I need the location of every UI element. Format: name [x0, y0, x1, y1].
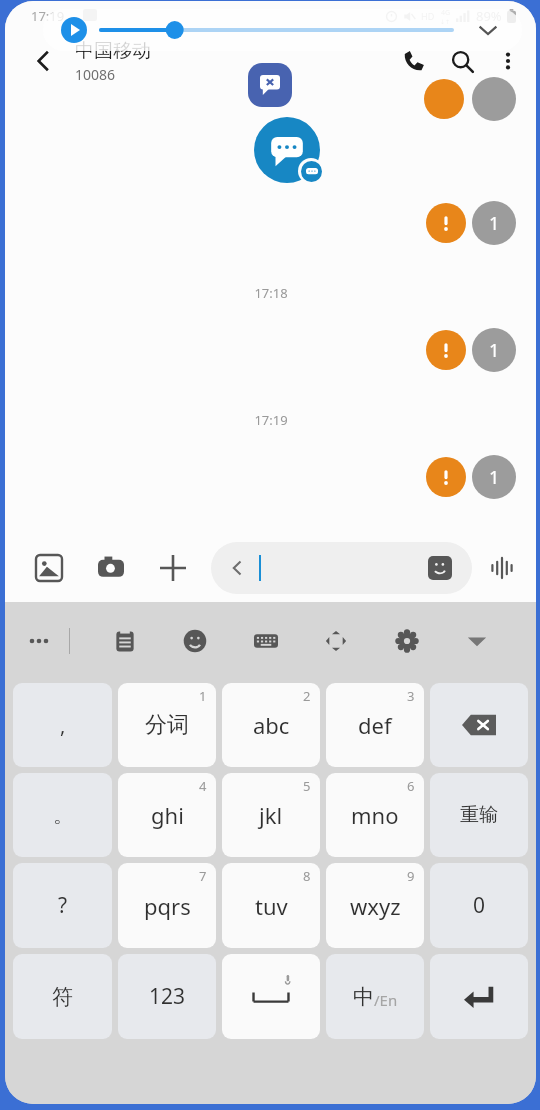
staticText: 中	[353, 984, 374, 1010]
staticText: ,	[60, 712, 66, 739]
button[interactable]: backspace	[430, 683, 528, 767]
button[interactable]: 重输	[430, 773, 528, 857]
button[interactable]: Back	[19, 37, 67, 85]
staticText: tuv	[255, 891, 288, 921]
button[interactable]: jkl	[222, 773, 320, 857]
button[interactable]: Add attachment	[153, 548, 193, 588]
button[interactable]: Gallery	[29, 548, 69, 588]
staticText: 3	[407, 687, 415, 705]
button[interactable]: Play	[43, 9, 522, 51]
staticText: 123	[149, 982, 186, 1011]
staticText: 4	[199, 777, 207, 795]
staticText: 17:19	[31, 7, 65, 25]
button[interactable]: 符	[13, 954, 112, 1039]
button[interactable]: ?	[13, 863, 112, 948]
button[interactable]: 1	[426, 455, 516, 499]
button[interactable]: 123	[118, 954, 216, 1039]
button[interactable]: enter	[430, 954, 528, 1039]
button[interactable]: 。	[13, 773, 112, 857]
staticText: 8	[303, 867, 311, 885]
staticText: HD	[421, 10, 435, 22]
button[interactable]: Emoji	[173, 619, 217, 663]
button[interactable]: ,	[13, 683, 112, 767]
staticText: 17:19	[254, 411, 288, 429]
button[interactable]: pqrs	[118, 863, 216, 948]
staticText: mno	[351, 800, 399, 830]
staticText: abc	[253, 710, 290, 740]
button[interactable]: More	[19, 621, 59, 661]
staticText: 6	[407, 777, 415, 795]
button[interactable]: abc	[222, 683, 320, 767]
button[interactable]: Hide keyboard	[455, 619, 499, 663]
button[interactable]: 0	[430, 863, 528, 948]
button[interactable]: ghi	[118, 773, 216, 857]
staticText: wxyz	[350, 891, 401, 921]
staticText: jkl	[259, 800, 283, 830]
staticText: 89%	[476, 7, 502, 25]
staticText: def	[358, 710, 392, 740]
button[interactable]: Dismiss bubble	[248, 63, 292, 107]
button[interactable]: Keyboard layout	[244, 619, 288, 663]
staticText: 分词	[145, 711, 189, 739]
button[interactable]: More options	[486, 39, 530, 83]
button[interactable]: mno	[326, 773, 424, 857]
button[interactable]: Clipboard	[103, 619, 147, 663]
button[interactable]: 中	[326, 954, 424, 1039]
button[interactable]: Search	[438, 37, 486, 85]
button[interactable]: 1	[426, 328, 516, 372]
button[interactable]: Call	[390, 37, 438, 85]
button[interactable]: space	[222, 954, 320, 1039]
staticText: ?	[58, 891, 68, 920]
staticText: pqrs	[144, 891, 191, 921]
staticText: 1	[199, 687, 207, 705]
staticText: 2	[303, 687, 311, 705]
other: Play	[61, 17, 87, 43]
staticText: ghi	[151, 800, 184, 830]
staticText: 17:18	[254, 284, 288, 302]
staticText: 7	[199, 867, 207, 885]
staticText: /En	[374, 990, 398, 1010]
button[interactable]: Keyboard settings	[385, 619, 429, 663]
button[interactable]: Move keyboard	[314, 619, 358, 663]
button[interactable]: 1	[426, 201, 516, 245]
staticText: 0	[473, 891, 486, 920]
staticText: 10086	[75, 65, 116, 84]
button[interactable]: wxyz	[326, 863, 424, 948]
button[interactable]	[211, 542, 472, 594]
button[interactable]: def	[326, 683, 424, 767]
button[interactable]: Messages bubble	[254, 117, 320, 183]
button[interactable]: Voice input	[482, 548, 522, 588]
button[interactable]: Camera	[91, 548, 131, 588]
staticText: 5	[303, 777, 311, 795]
staticText: 。	[53, 803, 73, 828]
staticText: 9	[407, 867, 415, 885]
button[interactable]: tuv	[222, 863, 320, 948]
staticText: 符	[52, 984, 73, 1010]
staticText: 1	[489, 465, 500, 490]
staticText: 重输	[460, 803, 498, 827]
staticText: 中国移动	[75, 39, 151, 63]
staticText: 1	[489, 211, 500, 236]
button[interactable]: 分词	[118, 683, 216, 767]
staticText: 1	[489, 338, 500, 363]
